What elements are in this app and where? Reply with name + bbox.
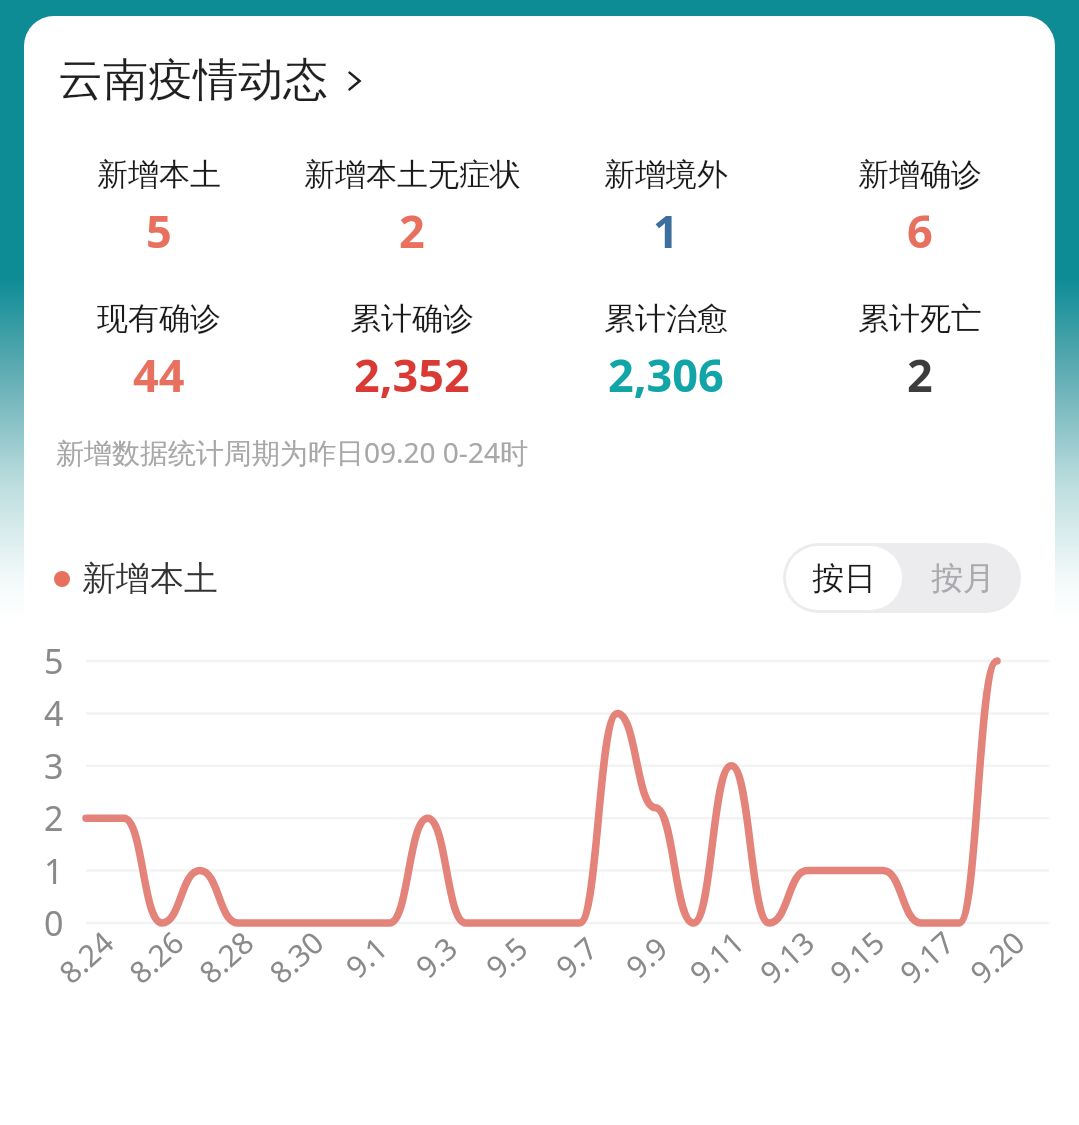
staticText: 按月 — [931, 558, 995, 598]
button[interactable]: 按月 — [905, 543, 1021, 613]
button[interactable]: 累计确诊 — [285, 299, 539, 405]
button[interactable]: 累计治愈 — [539, 299, 793, 405]
other: 查看详情 — [340, 67, 368, 95]
staticText: 5 — [146, 200, 172, 261]
button[interactable]: 新增本土 — [54, 557, 218, 600]
staticText: 2 — [907, 344, 933, 405]
button[interactable]: 新增确诊 — [793, 155, 1047, 261]
staticText: 2,352 — [354, 344, 470, 405]
button[interactable]: 按日 — [786, 546, 902, 610]
button[interactable]: 新增本土 — [32, 155, 285, 261]
staticText: 1 — [653, 200, 679, 261]
staticText: 按日 — [812, 558, 876, 598]
staticText: 云南疫情动态 — [58, 52, 328, 109]
button[interactable]: 新增本土无症状 — [285, 155, 539, 261]
staticText: 累计死亡 — [858, 299, 982, 338]
staticText: 累计治愈 — [604, 299, 728, 338]
button[interactable]: 现有确诊 — [32, 299, 285, 405]
staticText: 累计确诊 — [350, 299, 474, 338]
staticText: 2 — [399, 200, 425, 261]
staticText: 新增本土无症状 — [304, 155, 521, 194]
staticText: 现有确诊 — [97, 299, 221, 338]
staticText: 新增确诊 — [858, 155, 982, 194]
button[interactable]: 新增境外 — [539, 155, 793, 261]
button[interactable]: 云南疫情动态 — [58, 52, 368, 109]
staticText: 6 — [907, 200, 933, 261]
staticText: 新增本土 — [97, 155, 221, 194]
button[interactable]: 累计死亡 — [793, 299, 1047, 405]
staticText: 44 — [133, 344, 185, 405]
staticText: 2,306 — [608, 344, 724, 405]
staticText: 新增本土 — [82, 557, 218, 600]
staticText: 新增数据统计周期为昨日09.20 0-24时 — [56, 433, 528, 471]
staticText: 新增境外 — [604, 155, 728, 194]
